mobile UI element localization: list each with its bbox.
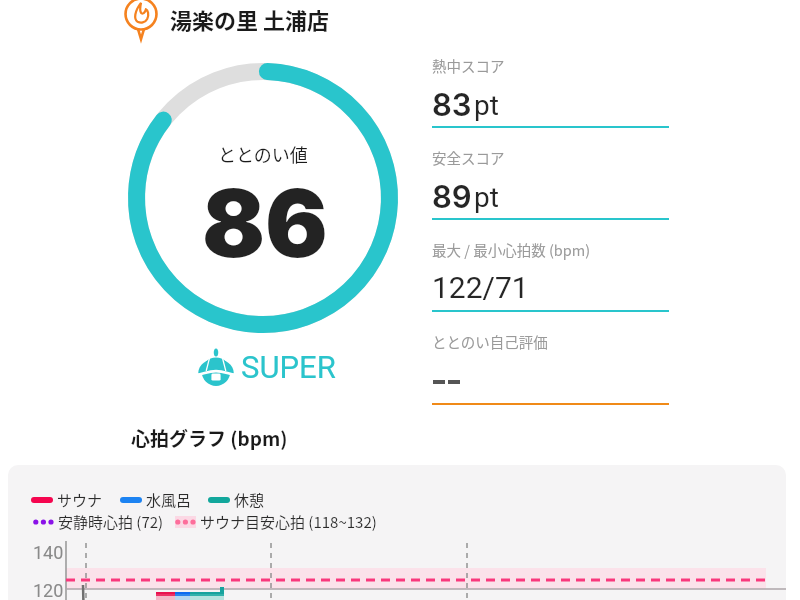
staticText: 83 (432, 86, 472, 124)
staticText: SUPER (241, 349, 336, 385)
button[interactable]: Totonoi rank SUPER (196, 347, 336, 387)
button[interactable]: Sauna location (123, 1, 329, 37)
button[interactable]: 熱中スコア (432, 55, 669, 147)
staticText: 安静時心拍 (72) (58, 511, 164, 533)
staticText: pt (474, 181, 499, 214)
staticText: ととのい自己評価 (432, 331, 548, 352)
staticText: 湯楽の里 土浦店 (170, 3, 329, 35)
staticText: pt (474, 89, 499, 122)
staticText: サウナ (57, 489, 103, 511)
staticText: 休憩 (234, 489, 265, 511)
staticText: 安全スコア (432, 147, 505, 168)
other: Sauna location (123, 1, 159, 37)
button[interactable]: ととのい自己評価 (432, 331, 669, 423)
other: Totonoi rank SUPER (196, 347, 236, 387)
staticText: 心拍グラフ (bpm) (131, 424, 288, 452)
staticText: 122/71 (432, 270, 529, 305)
staticText: ととのい値 (218, 141, 308, 167)
staticText: サウナ目安心拍 (118~132) (200, 511, 377, 533)
staticText: 熱中スコア (432, 55, 505, 76)
staticText: 89 (432, 178, 472, 216)
staticText: 120 (33, 580, 64, 600)
button[interactable]: 最大 / 最小心拍数 (bpm) (432, 239, 669, 331)
staticText: 水風呂 (146, 489, 192, 511)
staticText: 140 (33, 542, 64, 563)
staticText: 最大 / 最小心拍数 (bpm) (432, 239, 591, 260)
staticText: 86 (202, 167, 328, 280)
button[interactable]: 安全スコア (432, 147, 669, 239)
